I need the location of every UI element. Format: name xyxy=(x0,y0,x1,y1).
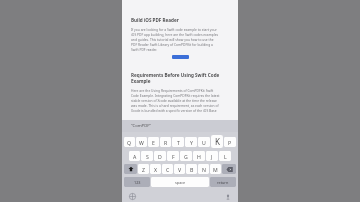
button[interactable]: C xyxy=(162,164,173,174)
button[interactable]: space xyxy=(151,177,209,187)
staticText: Code Example. Integrating ComPDFKit requ… xyxy=(131,93,220,97)
staticText: H xyxy=(197,153,201,160)
button[interactable]: U xyxy=(198,137,210,147)
button[interactable]: V xyxy=(174,164,185,174)
button[interactable]: “ComPDF” xyxy=(131,123,151,129)
button[interactable]: K xyxy=(211,135,223,148)
staticText: N xyxy=(202,166,206,173)
staticText: Xcode is bundled with a specific version… xyxy=(131,108,217,112)
staticText: G xyxy=(184,153,188,160)
staticText: D xyxy=(158,153,162,160)
staticText: K xyxy=(215,136,220,147)
button[interactable]: 123 xyxy=(124,177,150,187)
staticText: Here are the Using Requirements of ComPD… xyxy=(131,88,214,92)
staticText: R xyxy=(164,139,168,146)
staticText: A xyxy=(133,153,137,160)
button[interactable]: R xyxy=(160,137,171,147)
staticText: Swift PDF reader. xyxy=(131,47,158,51)
button[interactable]: B xyxy=(186,164,197,174)
button[interactable]: X xyxy=(150,164,161,174)
staticText: E xyxy=(152,139,155,146)
staticText: stable version of Xcode available at the… xyxy=(131,98,217,102)
button[interactable]: P xyxy=(224,137,236,147)
button[interactable]: G xyxy=(180,151,192,161)
button[interactable]: H xyxy=(193,151,205,161)
staticText: L xyxy=(224,153,227,160)
staticText: Y xyxy=(190,139,193,146)
staticText: If you are looking for a Swift code exam… xyxy=(131,27,217,31)
staticText: Requirements Before Using Swift Code xyxy=(131,72,220,78)
staticText: was made. This is a hard requirement, as… xyxy=(131,103,219,107)
button[interactable]: return xyxy=(210,177,236,187)
staticText: B xyxy=(190,166,194,173)
button[interactable]: Delete xyxy=(222,164,236,174)
staticText: 123 xyxy=(134,180,141,185)
button[interactable]: Q xyxy=(124,137,135,147)
staticText: X xyxy=(154,166,158,173)
staticText: M xyxy=(213,166,218,173)
staticText: Q xyxy=(127,139,132,146)
staticText: and guides. This tutorial will show you … xyxy=(131,37,214,41)
staticText: space xyxy=(175,180,186,185)
button[interactable]: A xyxy=(129,151,140,161)
button[interactable]: W xyxy=(136,137,147,147)
button[interactable]: Z xyxy=(138,164,149,174)
button[interactable]: L xyxy=(219,151,231,161)
staticText: J xyxy=(211,153,213,160)
button[interactable]: Y xyxy=(185,137,197,147)
button[interactable]: D xyxy=(154,151,166,161)
staticText: S xyxy=(146,153,149,160)
button[interactable]: N xyxy=(198,164,209,174)
button[interactable]: Open link xyxy=(172,55,189,59)
button[interactable]: E xyxy=(148,137,159,147)
staticText: Z xyxy=(142,166,145,173)
staticText: “ComPDF” xyxy=(131,123,151,129)
staticText: V xyxy=(178,166,182,173)
button[interactable]: Dictation xyxy=(223,192,232,201)
staticText: iOS PDF app building, here are the Swift… xyxy=(131,32,219,36)
button[interactable]: M xyxy=(210,164,221,174)
button[interactable]: F xyxy=(167,151,179,161)
button[interactable]: Shift xyxy=(124,164,137,174)
button[interactable]: J xyxy=(206,151,218,161)
button[interactable]: T xyxy=(172,137,184,147)
staticText: Build iOS PDF Reader xyxy=(131,17,179,23)
staticText: P xyxy=(228,139,232,146)
staticText: Example xyxy=(131,78,151,84)
staticText: W xyxy=(139,139,144,146)
staticText: PDF Reader Swift Library of ComPDFKit fo… xyxy=(131,42,213,46)
staticText: return xyxy=(217,180,229,185)
staticText: F xyxy=(172,153,175,160)
staticText: T xyxy=(177,139,180,146)
staticText: U xyxy=(202,139,206,146)
button[interactable]: Switch keyboard xyxy=(128,192,137,201)
staticText: C xyxy=(166,166,170,173)
button[interactable]: S xyxy=(141,151,153,161)
